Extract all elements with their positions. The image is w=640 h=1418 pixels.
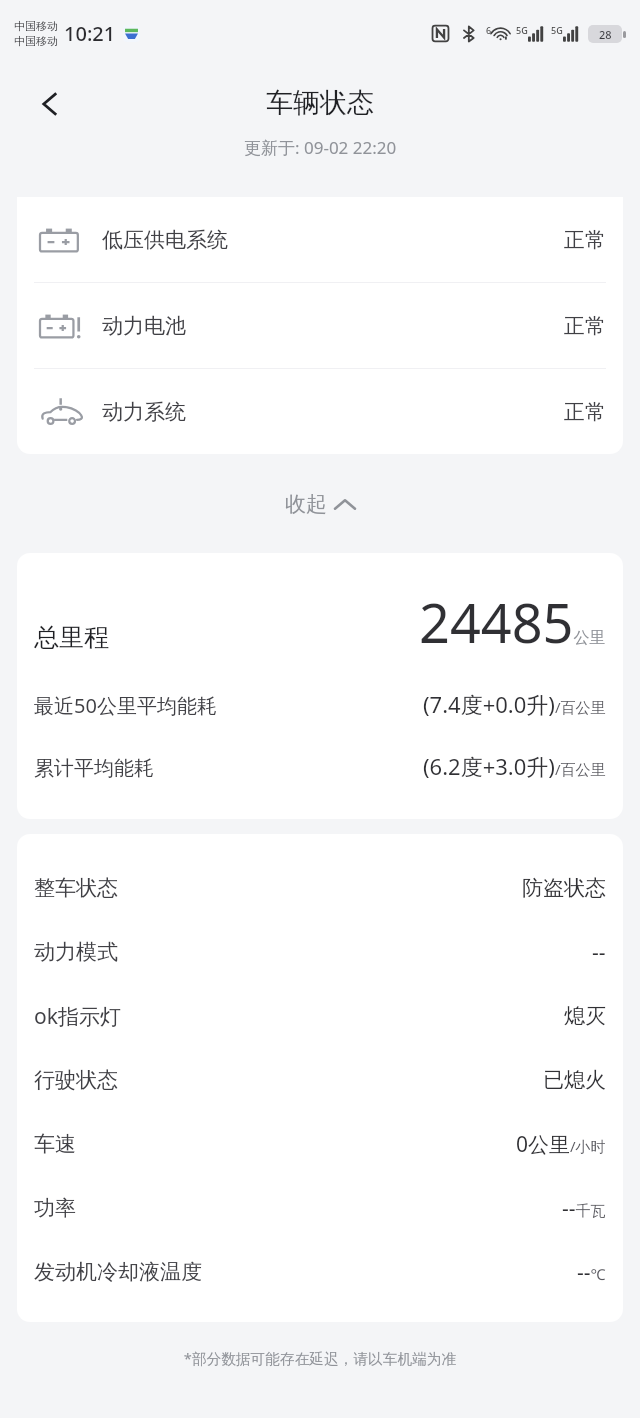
button[interactable]: 低压供电系统 [17, 197, 623, 282]
staticText: 24485公里 [419, 585, 606, 659]
staticText: 发动机冷却液温度 [34, 1259, 202, 1285]
button[interactable]: 发动机冷却液温度 [34, 1240, 606, 1304]
staticText: 收起 [285, 491, 327, 517]
staticText: 车速 [34, 1131, 76, 1157]
button[interactable]: 动力电池 [17, 283, 623, 368]
button[interactable]: 收起 [0, 454, 640, 553]
staticText: 中国移动 [14, 34, 58, 48]
staticText: 动力模式 [34, 939, 118, 965]
button[interactable]: 返回 [26, 80, 74, 128]
staticText: 更新于: 09-02 22:20 [244, 136, 397, 159]
staticText: 累计平均能耗 [34, 756, 154, 781]
button[interactable]: 动力系统 [17, 369, 623, 454]
button[interactable]: 车速 [34, 1112, 606, 1176]
staticText: 已熄火 [543, 1067, 606, 1093]
staticText: (6.2度+3.0升)/百公里 [423, 751, 606, 781]
staticText: --℃ [577, 1258, 606, 1287]
staticText: 正常 [564, 399, 606, 425]
staticText: 行驶状态 [34, 1067, 118, 1093]
staticText: 最近50公里平均能耗 [34, 692, 217, 719]
staticText: 28 [599, 27, 612, 42]
staticText: 6 [486, 24, 492, 36]
staticText: 0公里/小时 [516, 1130, 606, 1159]
staticText: 10:21 [64, 20, 116, 47]
staticText: 防盗状态 [522, 875, 606, 901]
staticText: 5G [551, 24, 563, 36]
staticText: --千瓦 [562, 1194, 606, 1223]
staticText: ok指示灯 [34, 1002, 121, 1031]
staticText: 低压供电系统 [102, 227, 228, 253]
staticText: 车辆状态 [266, 86, 374, 120]
button[interactable]: ok指示灯 [34, 984, 606, 1048]
button[interactable]: 动力模式 [34, 920, 606, 984]
button[interactable]: 行驶状态 [34, 1048, 606, 1112]
staticText: 整车状态 [34, 875, 118, 901]
staticText: 总里程 [34, 622, 109, 653]
staticText: 动力系统 [102, 399, 186, 425]
button[interactable]: 整车状态 [34, 856, 606, 920]
staticText: 中国移动 [14, 19, 58, 33]
staticText: 熄灭 [564, 1003, 606, 1029]
button[interactable]: 功率 [34, 1176, 606, 1240]
staticText: 功率 [34, 1195, 76, 1221]
staticText: 动力电池 [102, 313, 186, 339]
staticText: 正常 [564, 227, 606, 253]
staticText: *部分数据可能存在延迟，请以车机端为准 [0, 1348, 640, 1368]
staticText: 正常 [564, 313, 606, 339]
staticText: (7.4度+0.0升)/百公里 [423, 689, 606, 719]
staticText: 5G [516, 24, 528, 36]
staticText: -- [592, 938, 606, 967]
